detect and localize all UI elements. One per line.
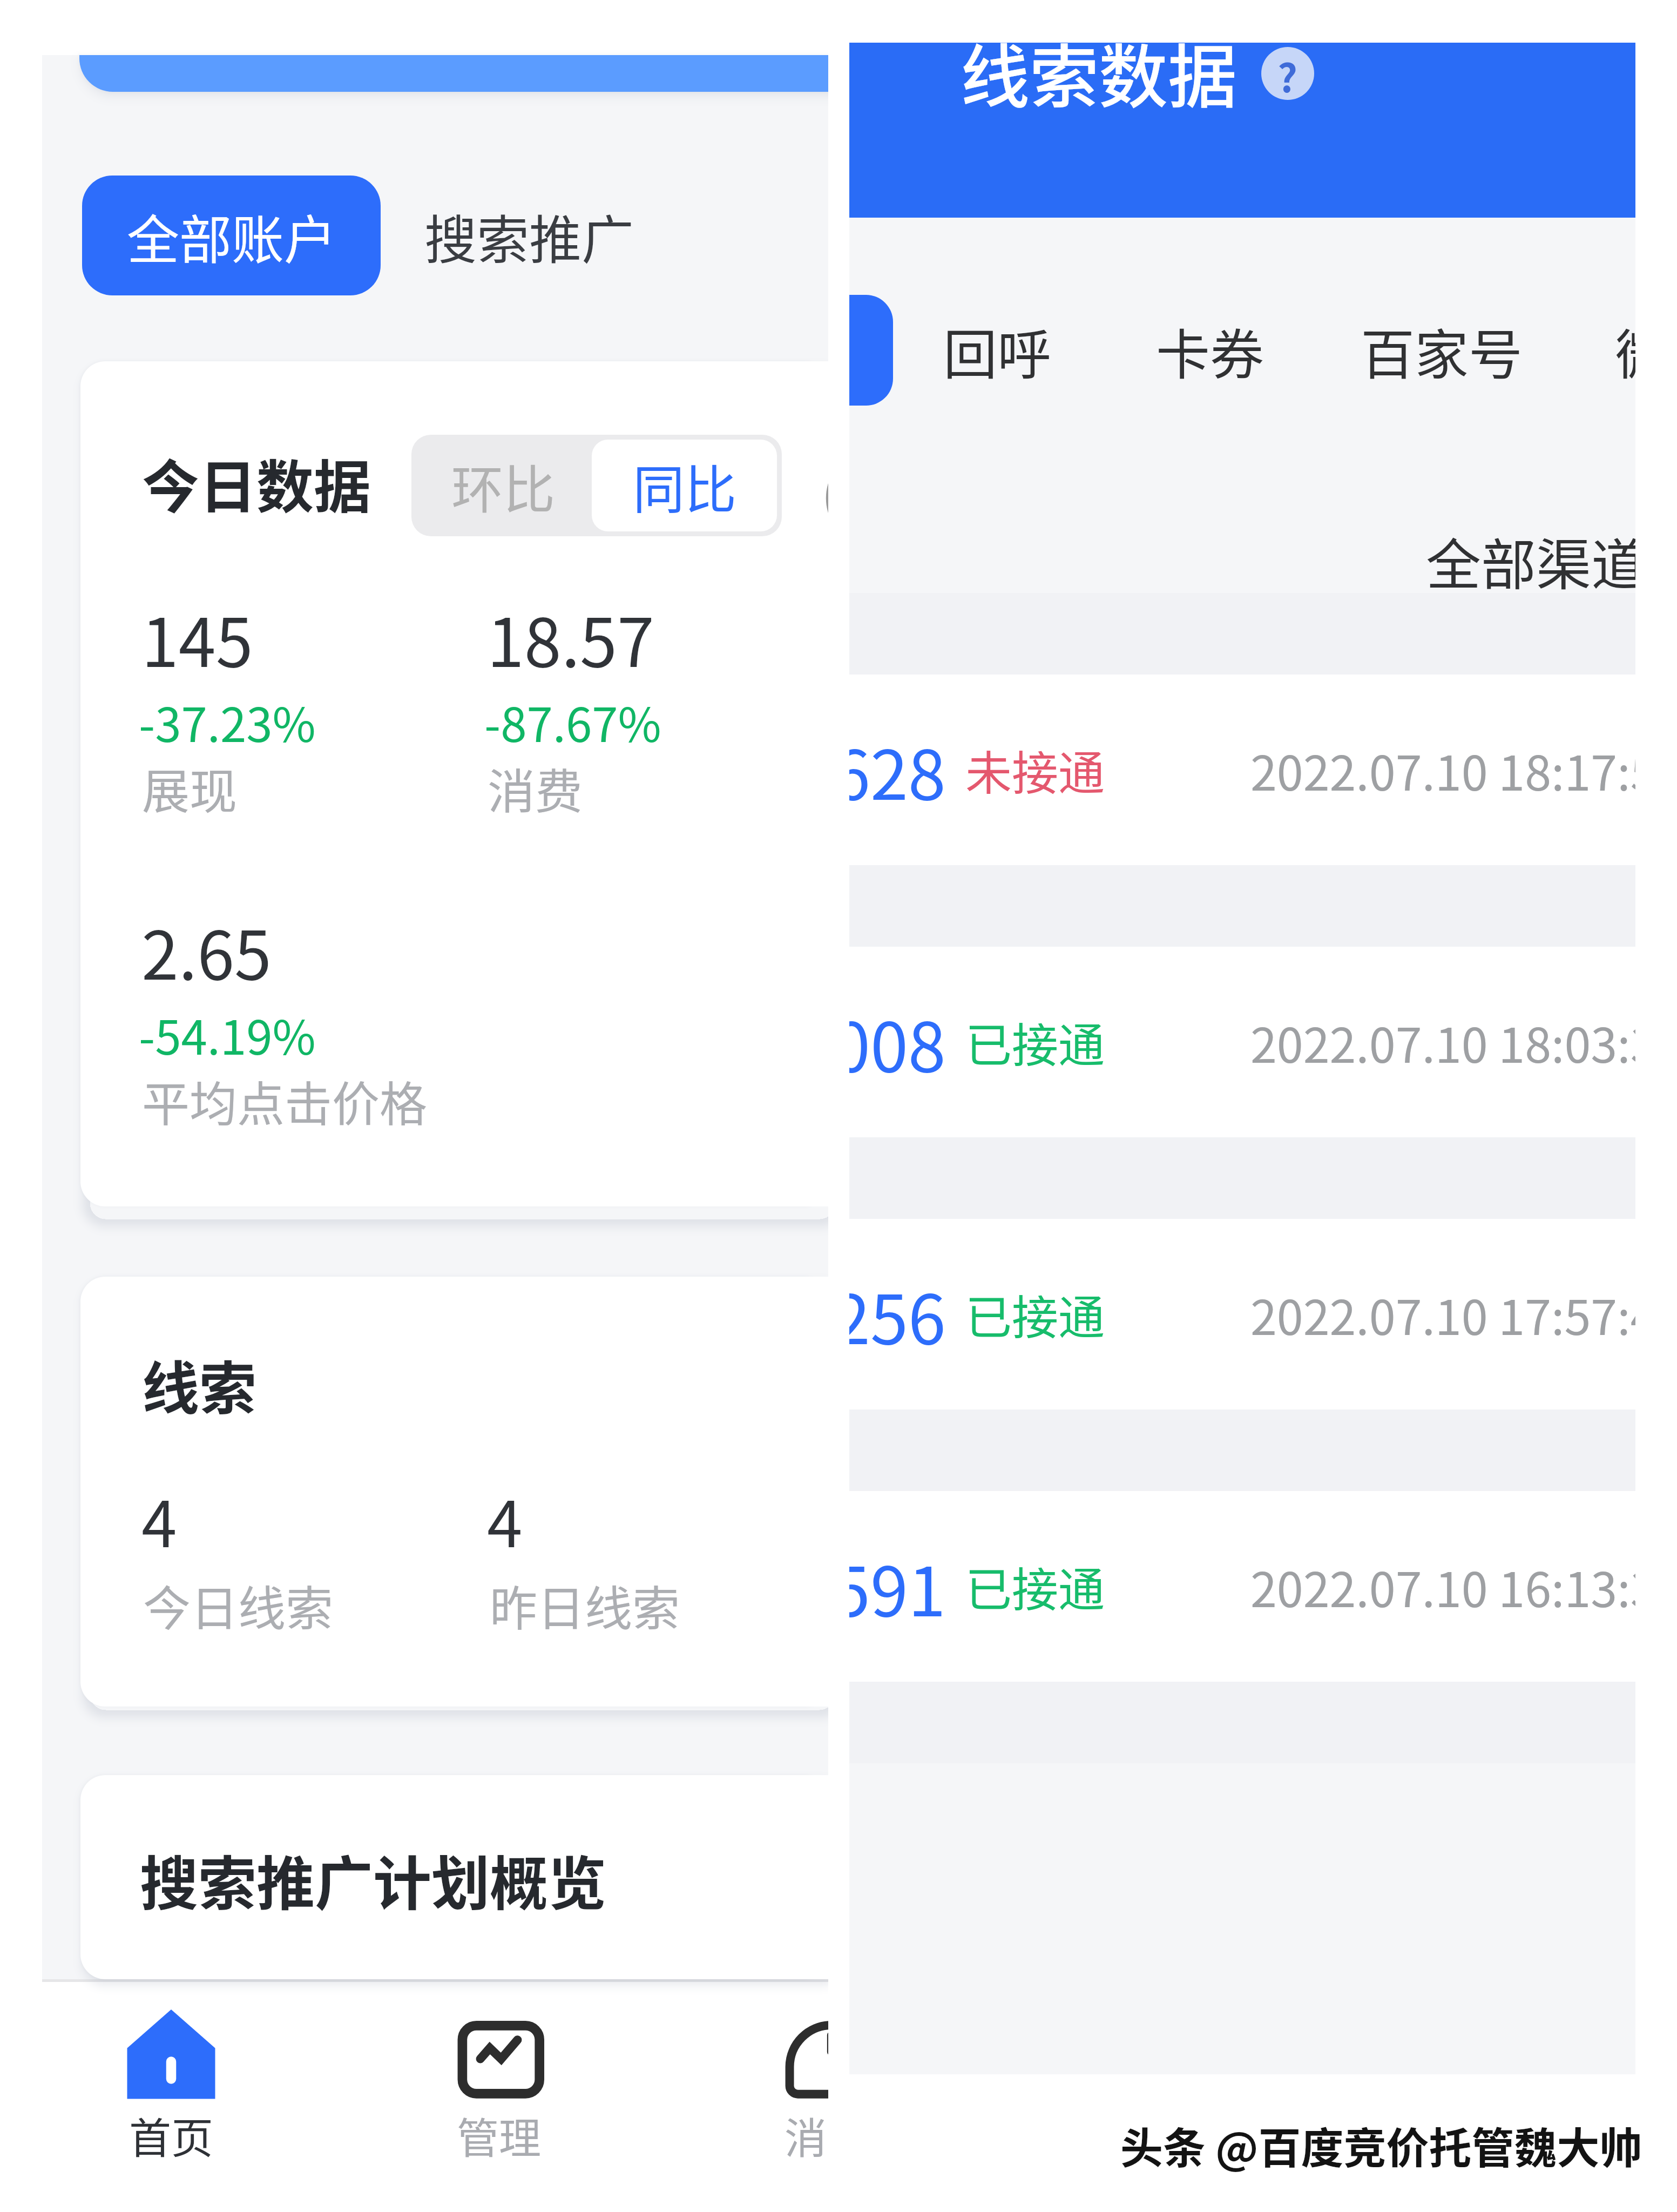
staticText: 同比 — [633, 448, 736, 523]
button[interactable]: 卡券 — [1156, 302, 1269, 399]
staticText: 搜索推广 — [424, 198, 634, 273]
staticText: 卡券 — [1156, 312, 1264, 390]
staticText: 线索 — [142, 1343, 256, 1425]
staticText: 昨日线索 — [490, 1570, 680, 1639]
staticText: 591 — [849, 1537, 946, 1636]
staticText: 4 — [487, 1473, 523, 1566]
button[interactable]: 搜索推广 — [420, 176, 658, 295]
staticText: 4 — [141, 1473, 177, 1566]
button[interactable]: 628 — [849, 675, 1635, 865]
staticText: 2022.07.10 17:57:4 — [1250, 1280, 1635, 1348]
button[interactable]: 回呼 — [943, 302, 1057, 399]
staticText: 已接通 — [965, 1280, 1105, 1348]
staticText: 18.57 — [487, 589, 654, 686]
button[interactable]: 微 — [1615, 302, 1635, 399]
staticText: 首页 — [129, 2105, 214, 2166]
staticText: ( — [821, 454, 828, 529]
staticText: 全部账户 — [127, 198, 336, 273]
staticText: 头条 @百度竞价托管魏大帅 — [1120, 2114, 1642, 2176]
staticText: 2022.07.10 18:17:5 — [1250, 736, 1635, 804]
staticText: 回呼 — [943, 312, 1051, 390]
button[interactable]: 环比 — [411, 435, 595, 536]
staticText: -87.67% — [484, 687, 661, 756]
staticText: 今日线索 — [143, 1570, 334, 1639]
staticText: 未接通 — [965, 736, 1105, 804]
staticText: 百家号 — [1361, 312, 1523, 390]
button[interactable]: 消息 — [740, 1998, 828, 2193]
staticText: 展现 — [142, 753, 238, 822]
staticText: ? — [1277, 47, 1298, 100]
staticText: 256 — [849, 1265, 946, 1364]
button[interactable]: 百家号 — [1361, 302, 1531, 399]
staticText: 已接通 — [965, 1008, 1105, 1076]
button[interactable]: 008 — [849, 947, 1635, 1137]
staticText: 2.65 — [141, 902, 272, 999]
staticText: 管理 — [457, 2105, 542, 2166]
button[interactable]: 同比 — [592, 440, 777, 531]
button[interactable]: 全部账户 — [82, 176, 381, 295]
button[interactable]: 管理 — [412, 1998, 586, 2193]
staticText: 消费 — [488, 753, 583, 822]
staticText: 环比 — [451, 448, 555, 523]
staticText: -37.23% — [139, 687, 316, 756]
button[interactable]: 全部 — [849, 295, 893, 406]
staticText: 消息 — [785, 2105, 828, 2166]
staticText: 搜索推广计划概览 — [140, 1837, 607, 1921]
staticText: 微 — [1615, 312, 1635, 390]
button[interactable]: 256 — [849, 1219, 1635, 1410]
staticText: 2022.07.10 16:13:3 — [1250, 1552, 1635, 1621]
staticText: 已接通 — [965, 1553, 1105, 1620]
staticText: 2022.07.10 18:03:3 — [1250, 1008, 1635, 1076]
staticText: 平均点击价格 — [142, 1066, 428, 1135]
button[interactable]: 帮助 — [1261, 47, 1314, 100]
button[interactable]: 591 — [849, 1491, 1635, 1682]
staticText: 628 — [849, 721, 946, 819]
staticText: -54.19% — [139, 1000, 316, 1068]
staticText: 线索数据 — [961, 43, 1238, 122]
staticText: 今日数据 — [142, 441, 371, 524]
button[interactable]: 全部渠道 — [1426, 518, 1635, 604]
button[interactable]: 首页 — [84, 1998, 258, 2193]
staticText: 145 — [141, 589, 253, 686]
staticText: 008 — [849, 993, 946, 1091]
staticText: 全部渠道 — [1426, 521, 1635, 601]
